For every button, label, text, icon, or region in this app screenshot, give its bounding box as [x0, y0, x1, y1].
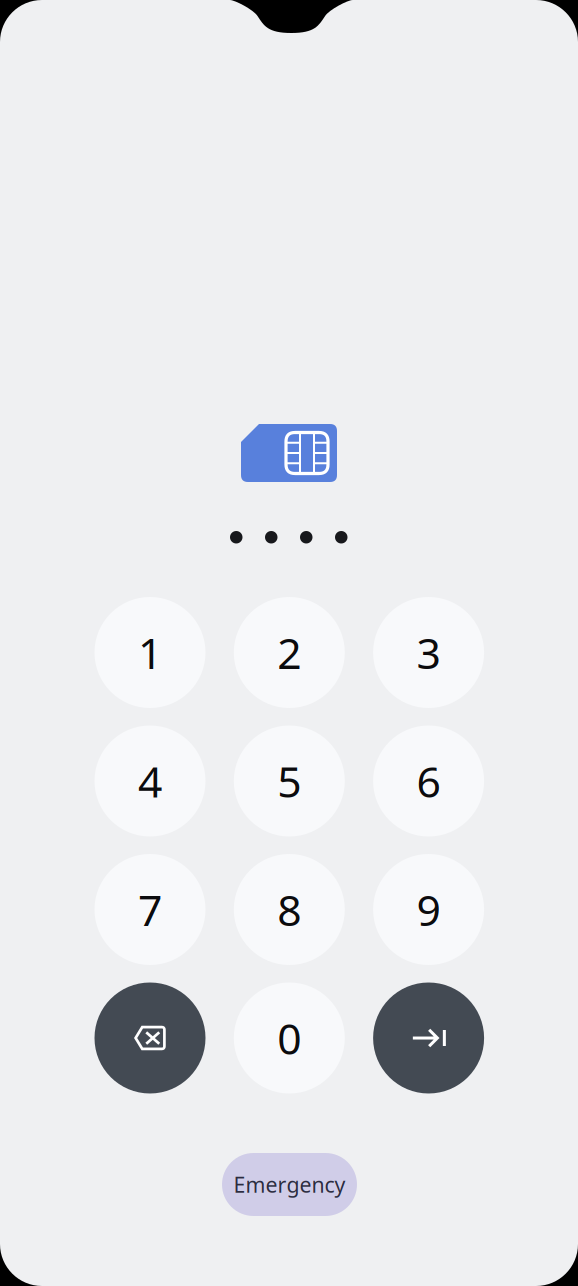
button[interactable]: Delete	[94, 982, 205, 1093]
button[interactable]: 9	[373, 854, 484, 965]
staticText: 8	[277, 881, 301, 938]
button[interactable]: 0	[234, 982, 345, 1093]
staticText: 7	[138, 881, 162, 938]
button[interactable]: Emergency	[222, 1153, 357, 1216]
button[interactable]: 8	[234, 854, 345, 965]
staticText: 5	[277, 753, 301, 809]
staticText: 2	[277, 624, 301, 681]
staticText: 0	[277, 1010, 301, 1066]
button[interactable]: 6	[373, 725, 484, 836]
button[interactable]: 1	[94, 597, 205, 708]
staticText: 1	[138, 624, 162, 681]
button[interactable]: 3	[373, 597, 484, 708]
staticText: 6	[417, 753, 441, 809]
button[interactable]: 7	[94, 854, 205, 965]
staticText: 9	[417, 881, 441, 938]
staticText: 3	[417, 624, 441, 681]
staticText: Emergency	[233, 1170, 345, 1199]
staticText: 4	[138, 753, 162, 809]
button[interactable]: 4	[94, 725, 205, 836]
button[interactable]: 2	[234, 597, 345, 708]
button[interactable]: 5	[234, 725, 345, 836]
button[interactable]: Enter	[373, 982, 484, 1093]
